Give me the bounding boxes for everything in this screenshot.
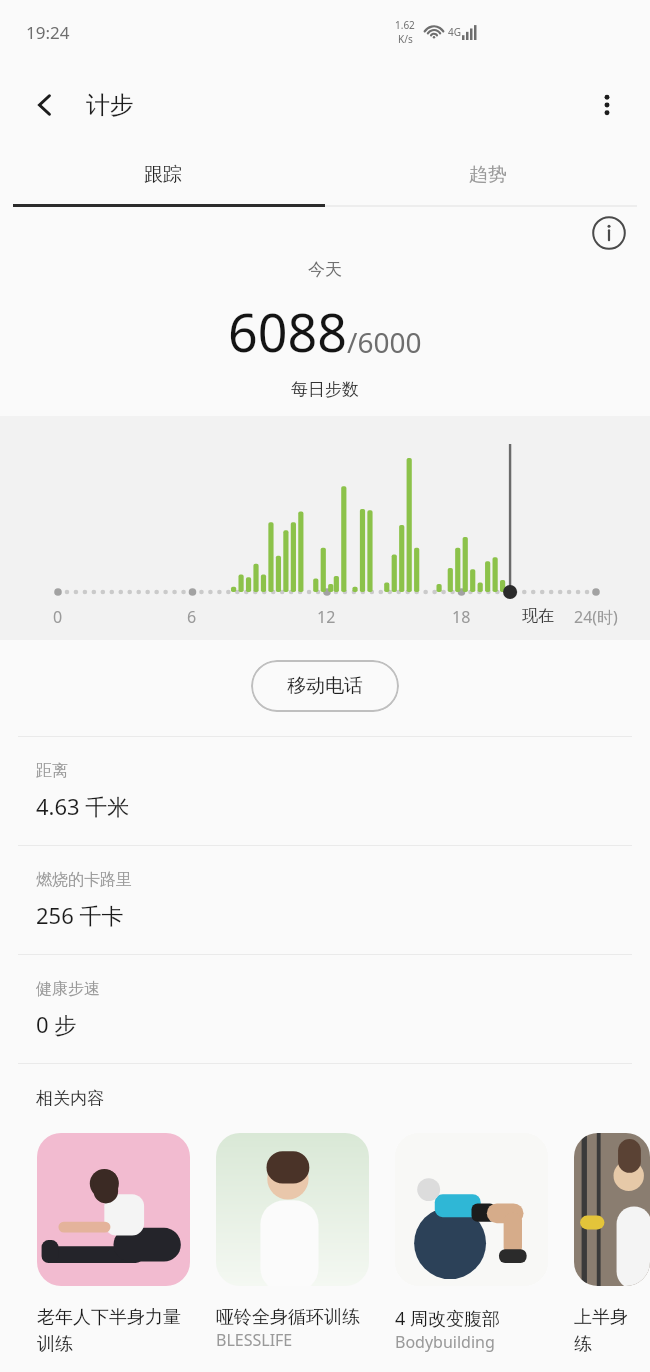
staticText: /6000 (347, 323, 422, 361)
staticText: 燃烧的卡路里 (36, 870, 132, 890)
staticText: 12 (317, 606, 336, 628)
staticText: 跟踪 (144, 163, 182, 187)
staticText: 哑铃全身循环训练 (216, 1306, 360, 1329)
button[interactable]: Back (22, 82, 68, 128)
staticText: 距离 (36, 761, 68, 781)
button[interactable]: 移动电话 (251, 660, 399, 712)
staticText: 4 周改变腹部 (395, 1306, 500, 1331)
button[interactable]: 上半身 练 (574, 1133, 650, 1356)
staticText: 6 (187, 606, 197, 628)
staticText: 上半身 练 (574, 1306, 628, 1356)
button[interactable]: 燃烧的卡路里 (0, 846, 650, 954)
staticText: Bodybuilding (395, 1331, 495, 1353)
staticText: K/s (398, 32, 413, 46)
staticText: 256 千卡 (36, 900, 124, 930)
staticText: BLESSLIFE (216, 1329, 293, 1351)
button[interactable]: 老年人下半身力量 训练 (37, 1133, 190, 1356)
button[interactable]: 跟踪 (0, 146, 325, 204)
staticText: 4G (448, 25, 461, 39)
button[interactable]: More options (584, 82, 630, 128)
staticText: 今天 (308, 259, 342, 280)
staticText: 现在 (522, 606, 554, 626)
staticText: 0 (53, 606, 63, 628)
staticText: 趋势 (469, 163, 507, 187)
staticText: 0 步 (36, 1009, 77, 1039)
button[interactable]: 趋势 (325, 146, 650, 204)
button[interactable]: 距离 (0, 737, 650, 845)
staticText: 健康步速 (36, 979, 100, 999)
staticText: 4.63 千米 (36, 791, 130, 821)
staticText: 老年人下半身力量 训练 (37, 1306, 181, 1356)
staticText: 每日步数 (291, 379, 359, 400)
staticText: 移动电话 (287, 674, 363, 698)
staticText: 19:24 (26, 21, 70, 44)
staticText: 计步 (86, 90, 134, 120)
staticText: 6088 (228, 296, 347, 367)
staticText: 1.62 (395, 18, 415, 32)
button[interactable]: 健康步速 (0, 955, 650, 1063)
button[interactable]: Information (588, 212, 630, 254)
staticText: 18 (452, 606, 471, 628)
staticText: 24(时) (574, 606, 618, 628)
staticText: 相关内容 (36, 1088, 104, 1109)
button[interactable]: 哑铃全身循环训练 (216, 1133, 369, 1351)
button[interactable]: 4 周改变腹部 (395, 1133, 548, 1353)
